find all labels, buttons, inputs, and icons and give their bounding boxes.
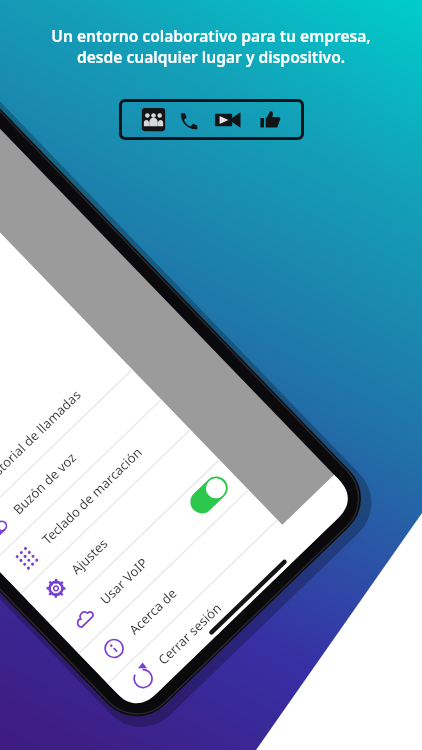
button[interactable]: Meetings	[141, 107, 166, 132]
button[interactable]: Call	[178, 109, 199, 130]
button[interactable]: Video call	[215, 107, 241, 133]
button[interactable]: Like	[260, 109, 281, 130]
staticText: desde cualquier lugar y dispositivo.	[0, 46, 422, 67]
staticText: Un entorno colaborativo para tu empresa,	[0, 25, 422, 46]
